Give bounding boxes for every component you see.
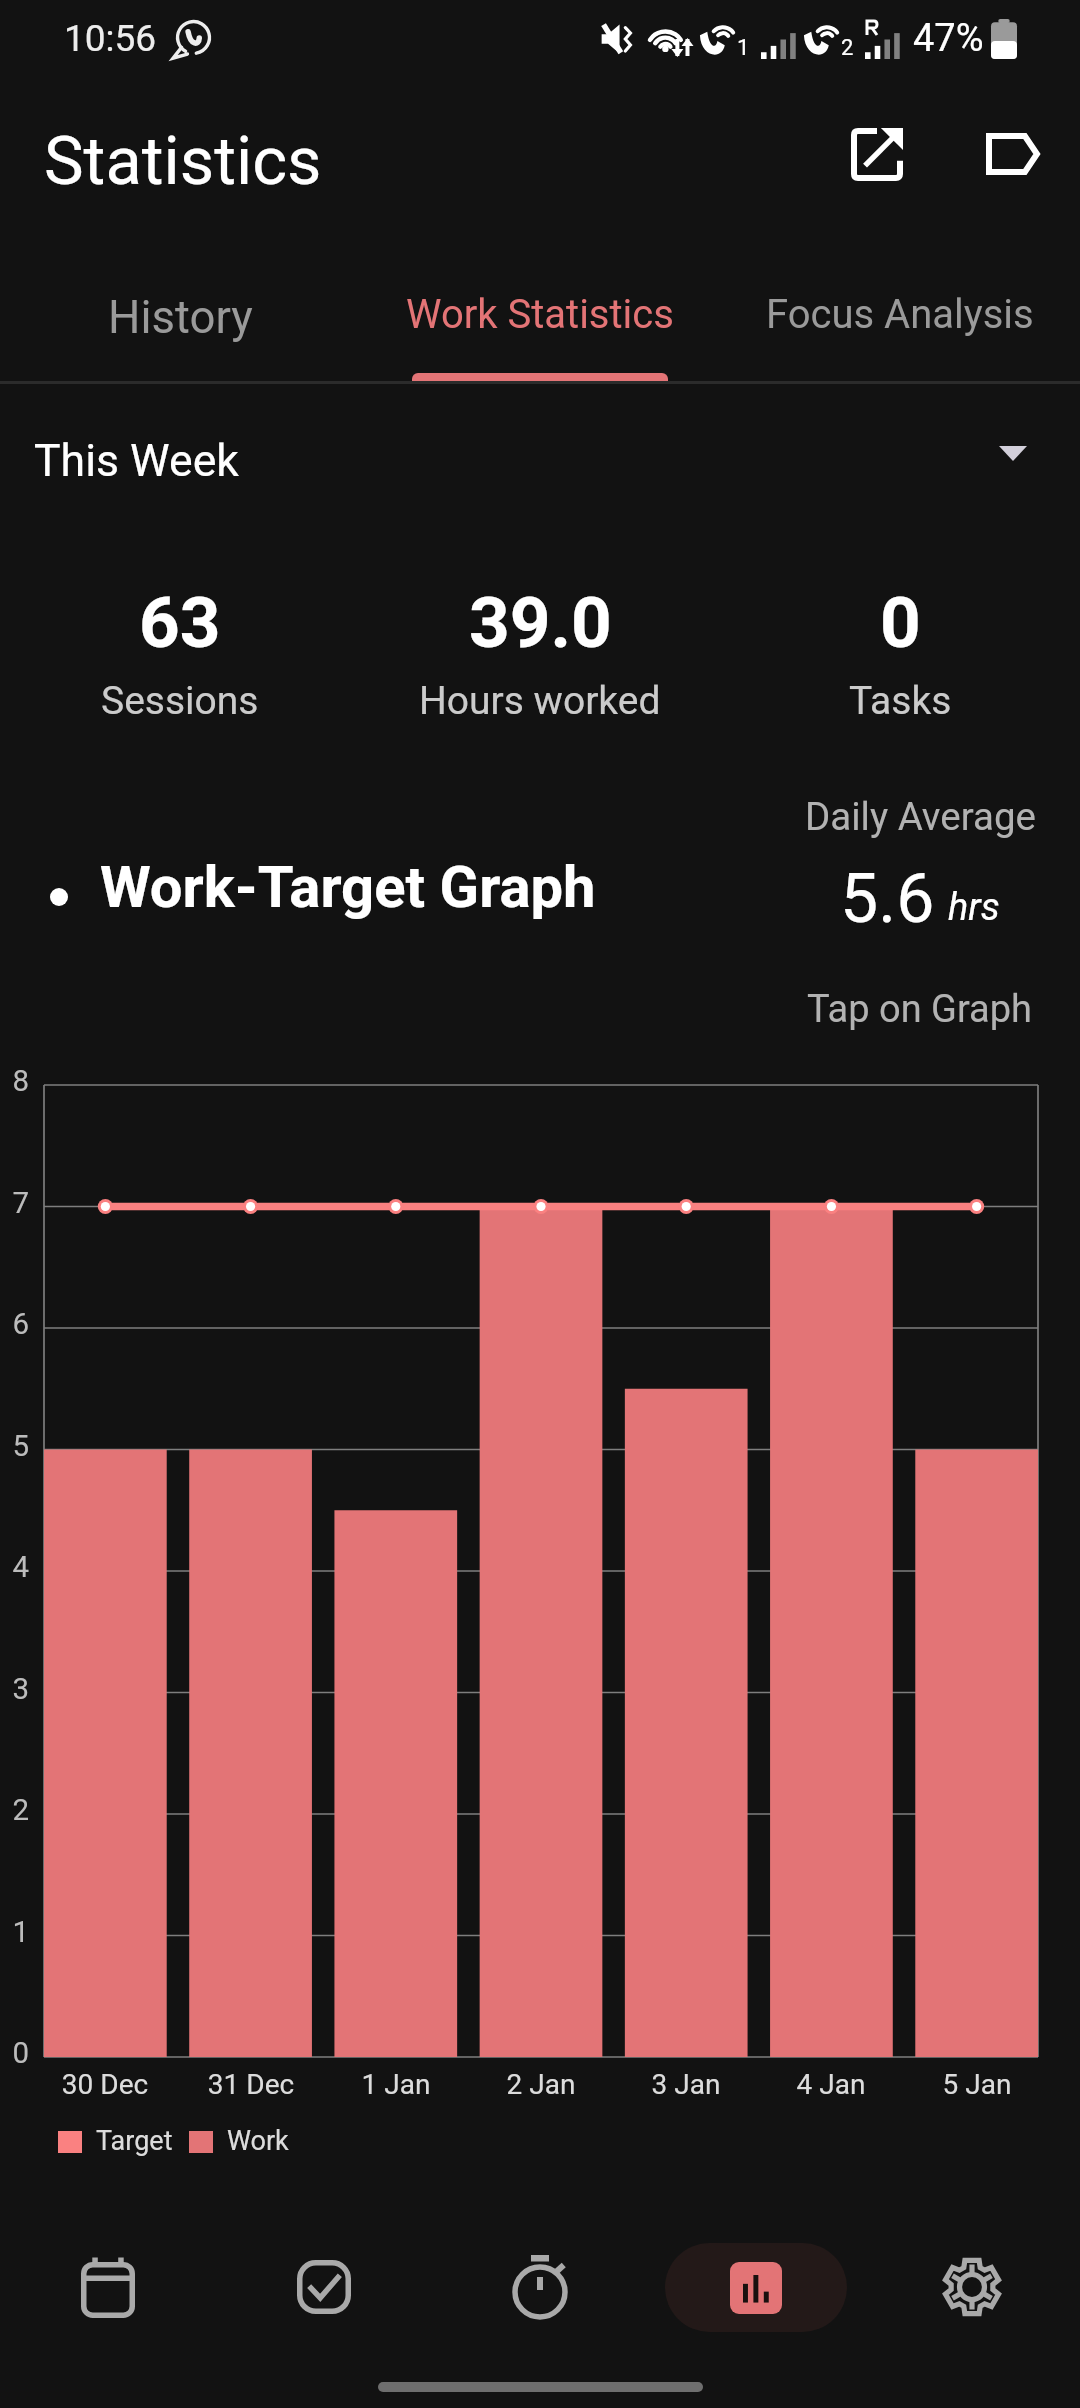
staticText: 1 Jan bbox=[326, 2068, 466, 2101]
staticText: 10:56 bbox=[64, 17, 157, 60]
staticText: 5.6 bbox=[840, 859, 935, 939]
staticText: 0 bbox=[0, 2036, 29, 2071]
staticText: 1 bbox=[0, 1915, 29, 1950]
button[interactable]: Settings bbox=[864, 2230, 1080, 2344]
staticText: 2 bbox=[841, 35, 854, 61]
button[interactable]: Work Statistics bbox=[360, 236, 720, 384]
staticText: 8 bbox=[0, 1064, 29, 1099]
button[interactable]: Calendar bbox=[0, 2230, 216, 2344]
button[interactable]: Timer bbox=[432, 2230, 648, 2344]
staticText: History bbox=[108, 291, 253, 344]
staticText: 1 bbox=[737, 35, 750, 61]
button[interactable]: Statistics bbox=[665, 2243, 847, 2332]
staticText: Daily Average bbox=[805, 794, 1036, 839]
staticText: 4 bbox=[0, 1550, 29, 1585]
button[interactable]: Focus Analysis bbox=[720, 236, 1080, 384]
staticText: Work bbox=[227, 2125, 289, 2157]
staticText: 7 bbox=[0, 1186, 29, 1221]
staticText: Target bbox=[96, 2125, 173, 2157]
staticText: 6 bbox=[0, 1307, 29, 1342]
staticText: 3 bbox=[0, 1672, 29, 1707]
staticText: Work-Target Graph bbox=[100, 853, 596, 921]
staticText: This Week bbox=[34, 435, 239, 487]
button[interactable]: Open in new window bbox=[827, 104, 927, 204]
staticText: 31 Dec bbox=[181, 2068, 321, 2101]
staticText: 3 Jan bbox=[616, 2068, 756, 2101]
staticText: hrs bbox=[948, 885, 1000, 930]
staticText: Sessions bbox=[101, 678, 259, 724]
staticText: Tasks bbox=[849, 678, 952, 724]
staticText: 4 Jan bbox=[761, 2068, 901, 2101]
staticText: 5 Jan bbox=[907, 2068, 1047, 2101]
staticText: Focus Analysis bbox=[766, 291, 1034, 338]
button[interactable]: History bbox=[0, 236, 360, 384]
staticText: 39.0 bbox=[469, 581, 612, 664]
staticText: Work Statistics bbox=[406, 291, 674, 338]
staticText: 2 bbox=[0, 1793, 29, 1828]
staticText: 47% bbox=[913, 16, 984, 61]
button[interactable]: This Week bbox=[0, 404, 1080, 509]
staticText: 63 bbox=[139, 581, 221, 664]
button[interactable]: Tasks bbox=[216, 2230, 432, 2344]
button[interactable]: Label bbox=[963, 104, 1063, 204]
staticText: Statistics bbox=[44, 122, 322, 200]
button[interactable] bbox=[0, 0, 1080, 2408]
staticText: Hours worked bbox=[419, 678, 661, 724]
staticText: 5 bbox=[0, 1429, 29, 1464]
staticText: 0 bbox=[880, 581, 921, 664]
staticText: 2 Jan bbox=[471, 2068, 611, 2101]
staticText: Tap on Graph bbox=[807, 987, 1033, 1032]
staticText: 30 Dec bbox=[35, 2068, 175, 2101]
